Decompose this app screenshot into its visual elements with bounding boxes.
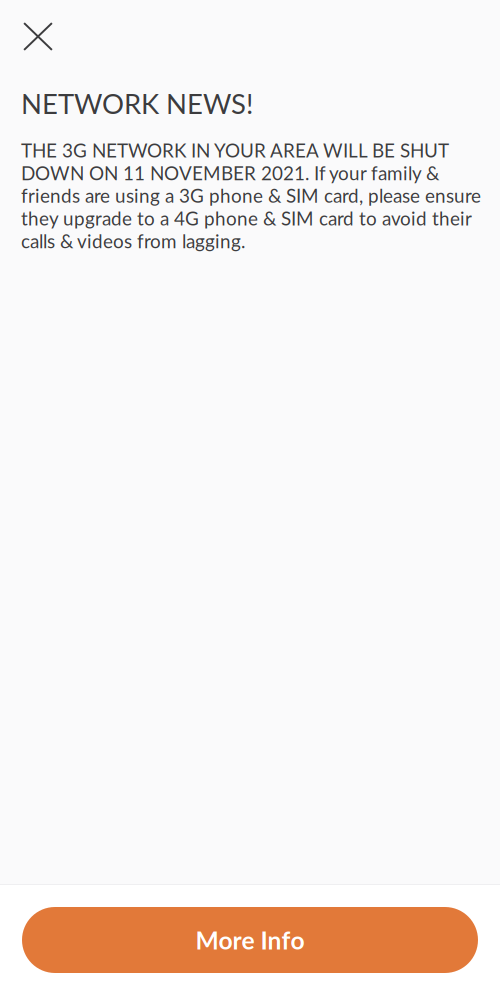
button[interactable]: Close	[0, 0, 71, 63]
button[interactable]: More Info	[22, 907, 478, 973]
staticText: THE 3G NETWORK IN YOUR AREA WILL BE SHUT…	[21, 139, 481, 252]
staticText: More Info	[195, 925, 304, 955]
staticText: NETWORK NEWS!	[21, 87, 253, 120]
